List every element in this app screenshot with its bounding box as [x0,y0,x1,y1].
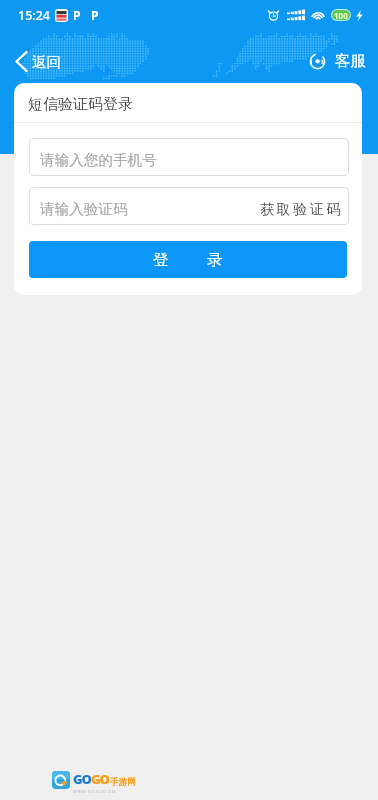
staticText: 获取验证码 [260,200,343,218]
staticText: GO [91,770,109,788]
button[interactable]: 获取验证码 [260,200,343,218]
staticText: 客服 [335,51,366,71]
staticText: P [73,7,81,23]
staticText: 登 [153,250,169,270]
button[interactable]: GO [52,770,136,794]
button[interactable]: 请输入验证码 [29,187,349,225]
button[interactable]: 客服 [306,44,369,78]
staticText: 请输入您的手机号 [40,151,157,169]
staticText: 短信验证码登录 [28,95,133,114]
staticText: 请输入验证码 [40,200,128,218]
staticText: 返回 [32,53,61,71]
other: 客服 [309,53,326,70]
staticText: WWW.GOGOD.CN [73,789,116,794]
button[interactable]: 返回 [12,44,64,79]
button[interactable]: 登 [29,241,347,278]
staticText: GO [73,770,91,788]
staticText: 15:24 [18,7,51,24]
staticText: 100 [334,10,348,20]
staticText: 录 [207,250,223,270]
staticText: P [91,7,99,23]
button[interactable]: 请输入您的手机号 [29,138,349,176]
staticText: 手游网 [110,777,136,788]
